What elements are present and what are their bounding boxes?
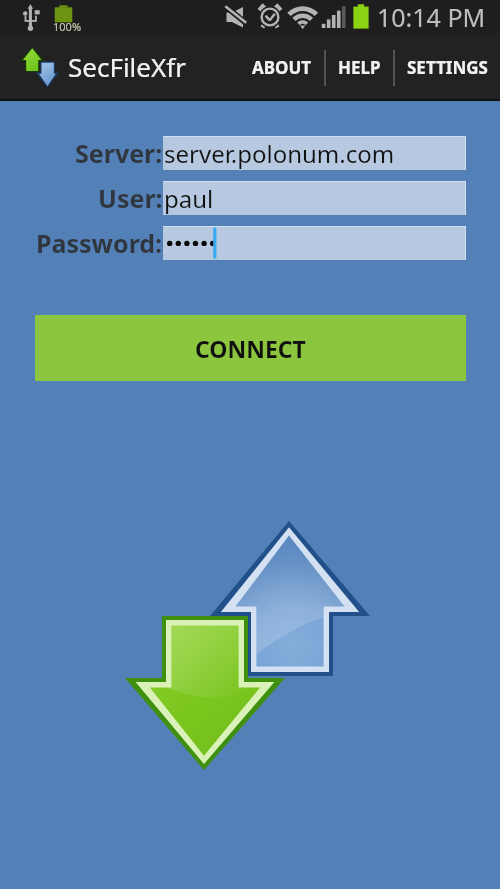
button[interactable]: CONNECT: [35, 315, 466, 381]
staticText: HELP: [338, 56, 381, 79]
staticText: CONNECT: [195, 333, 306, 364]
button[interactable]: HELP: [326, 40, 393, 95]
staticText: SecFileXfr: [68, 49, 186, 84]
staticText: User:: [98, 181, 163, 215]
staticText: Password:: [36, 226, 163, 260]
staticText: server.polonum.com: [164, 137, 395, 170]
staticText: 100%: [53, 19, 82, 34]
staticText: Server:: [75, 136, 163, 170]
button[interactable]: server.polonum.com: [163, 136, 466, 170]
staticText: ABOUT: [252, 56, 312, 79]
staticText: paul: [164, 182, 214, 215]
button[interactable]: SETTINGS: [395, 40, 500, 95]
button[interactable]: ABOUT: [240, 40, 324, 95]
staticText: SETTINGS: [407, 56, 488, 79]
button[interactable]: [163, 226, 466, 260]
button[interactable]: SecFileXfr: [0, 34, 186, 101]
button[interactable]: paul: [163, 181, 466, 215]
staticText: 10:14 PM: [377, 0, 486, 34]
